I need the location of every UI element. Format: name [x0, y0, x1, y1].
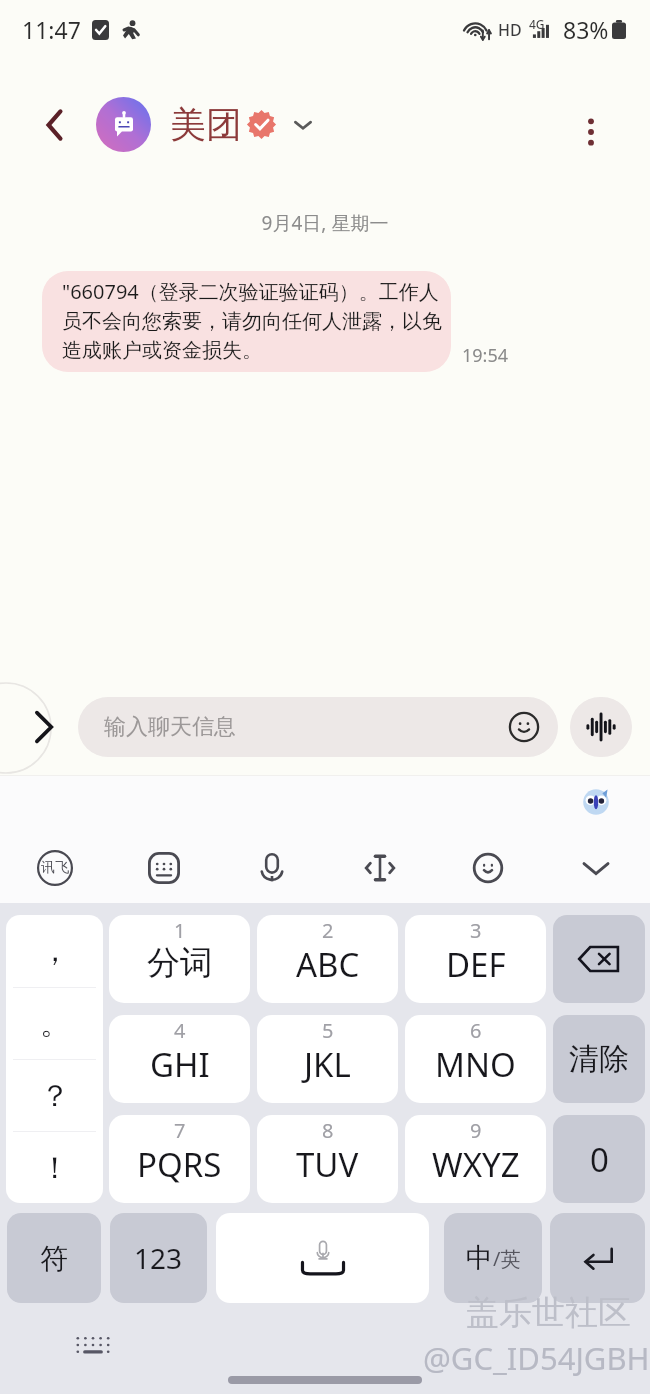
button[interactable]: Enter [550, 1213, 645, 1303]
button[interactable]: 2 [257, 915, 398, 1003]
button[interactable]: More options [567, 108, 615, 156]
button[interactable]: 符 [7, 1213, 101, 1303]
button[interactable]: Keyboard layout [109, 837, 218, 899]
button[interactable]: Hide keyboard [542, 837, 650, 899]
staticText: 4 [174, 1017, 186, 1044]
button[interactable]: Input method [0, 837, 109, 899]
staticText: 4G [529, 16, 545, 32]
button[interactable]: 清除 [553, 1015, 645, 1103]
button[interactable]: 5 [257, 1015, 398, 1103]
staticText: JKL [304, 1042, 351, 1087]
button[interactable]: 8 [257, 1115, 398, 1203]
staticText: PQRS [137, 1142, 222, 1187]
staticText: 3 [470, 917, 482, 944]
button[interactable]: Show details [286, 108, 320, 142]
button[interactable]: Voice input [218, 837, 326, 899]
staticText: 讯飞 [41, 859, 69, 877]
staticText: 。 [40, 1005, 70, 1043]
button[interactable]: Back [29, 99, 81, 151]
staticText: "660794（登录二次验证验证码）。工作人员不会向您索要，请勿向任何人泄露，以… [62, 278, 444, 363]
staticText: @GC_ID54JGBH [423, 1337, 650, 1379]
staticText: ！ [40, 1149, 70, 1187]
button[interactable]: Contact avatar [96, 97, 151, 152]
staticText: 2 [322, 917, 334, 944]
staticText: ABC [296, 942, 360, 987]
staticText: 分词 [147, 942, 213, 984]
button[interactable]: Voice message [570, 697, 632, 757]
staticText: 9月4日, 星期一 [0, 210, 650, 236]
staticText: 83% [563, 14, 609, 45]
staticText: 5 [322, 1017, 334, 1044]
staticText: TUV [296, 1142, 359, 1187]
staticText: 11:47 [22, 14, 81, 45]
staticText: 123 [134, 1239, 183, 1277]
button[interactable]: ， [6, 915, 103, 1203]
button[interactable]: 6 [405, 1015, 546, 1103]
staticText: 清除 [569, 1040, 629, 1078]
staticText: WXYZ [432, 1142, 520, 1187]
button[interactable]: 0 [553, 1115, 645, 1203]
button[interactable]: 3 [405, 915, 546, 1003]
staticText: 中 [466, 1241, 493, 1275]
button[interactable]: Expand actions [0, 697, 78, 757]
button[interactable]: 7 [109, 1115, 250, 1203]
button[interactable]: Emoji [502, 705, 546, 749]
staticText: ， [40, 932, 70, 970]
button[interactable]: 中 [444, 1213, 542, 1303]
staticText: 1 [174, 917, 186, 944]
button[interactable]: 输入聊天信息 [78, 697, 558, 757]
button[interactable]: 9 [405, 1115, 546, 1203]
staticText: 美团 [170, 102, 242, 147]
button[interactable]: Space [216, 1213, 429, 1303]
staticText: 0 [590, 1137, 609, 1182]
staticText: 7 [174, 1117, 186, 1144]
button[interactable]: Backspace [553, 915, 645, 1003]
staticText: 9 [470, 1117, 482, 1144]
staticText: 8 [322, 1117, 334, 1144]
staticText: /英 [493, 1245, 521, 1272]
staticText: 19:54 [462, 343, 509, 368]
staticText: 输入聊天信息 [104, 713, 236, 741]
staticText: ？ [40, 1077, 70, 1115]
button[interactable]: 123 [110, 1213, 207, 1303]
button[interactable]: 1 [109, 915, 250, 1003]
staticText: DEF [446, 942, 506, 987]
staticText: HD [498, 19, 522, 41]
staticText: MNO [435, 1042, 516, 1087]
staticText: 盖乐世社区 [466, 1292, 631, 1334]
button[interactable]: Emoji [434, 837, 542, 899]
button[interactable]: Cursor control [326, 837, 434, 899]
staticText: 6 [470, 1017, 482, 1044]
button[interactable]: "660794（登录二次验证验证码）。工作人员不会向您索要，请勿向任何人泄露，以… [42, 271, 451, 372]
staticText: 符 [40, 1241, 68, 1276]
button[interactable]: 4 [109, 1015, 250, 1103]
staticText: GHI [150, 1042, 210, 1087]
button[interactable]: Switch keyboard [62, 1323, 124, 1367]
